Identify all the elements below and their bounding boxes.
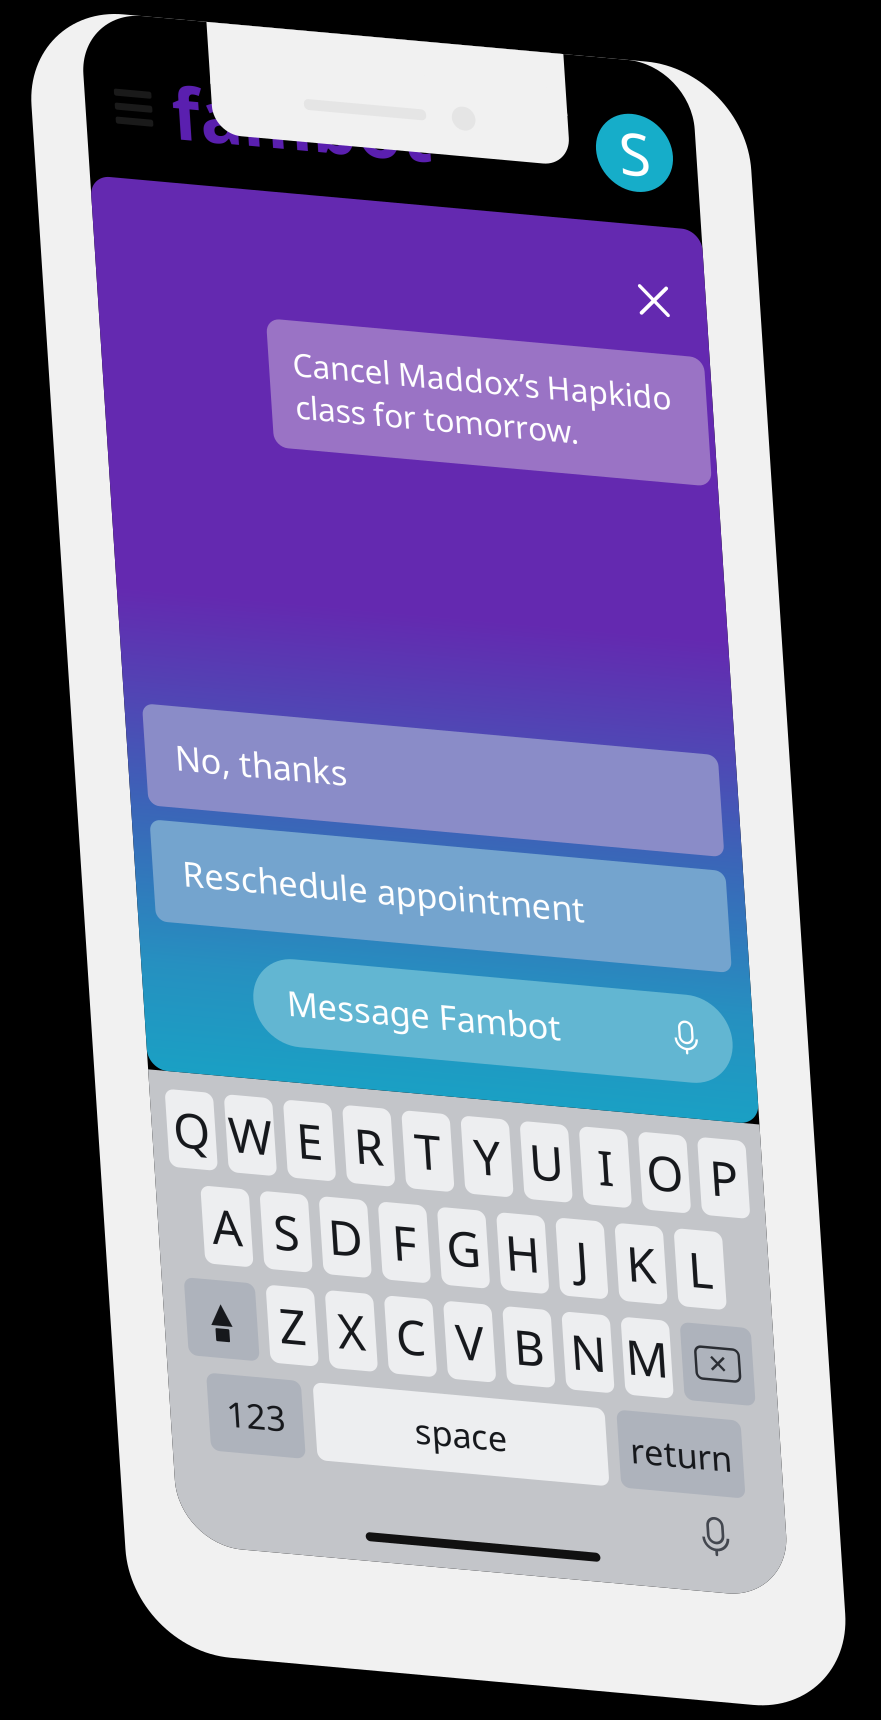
staticText: L bbox=[668, 1217, 693, 1280]
staticText: A bbox=[185, 1217, 216, 1280]
button[interactable]: K bbox=[596, 1209, 645, 1287]
button[interactable]: Q bbox=[146, 1115, 195, 1193]
button[interactable]: J bbox=[536, 1209, 585, 1287]
staticText: S bbox=[671, 91, 703, 169]
staticText: fambot bbox=[218, 83, 481, 178]
button[interactable]: Backspace bbox=[656, 1303, 728, 1381]
button[interactable]: I bbox=[566, 1115, 615, 1193]
staticText: X bbox=[306, 1311, 334, 1374]
staticText: 123 bbox=[187, 1413, 247, 1459]
button[interactable]: W bbox=[206, 1115, 255, 1193]
button[interactable]: C bbox=[356, 1303, 405, 1381]
button[interactable]: G bbox=[416, 1209, 465, 1287]
button[interactable]: S bbox=[236, 1209, 285, 1287]
button[interactable]: 123 bbox=[169, 1397, 265, 1475]
staticText: K bbox=[605, 1217, 635, 1280]
staticText: H bbox=[482, 1217, 518, 1280]
button[interactable]: return bbox=[585, 1397, 711, 1475]
staticText: T bbox=[397, 1123, 424, 1186]
staticText: S bbox=[247, 1217, 273, 1280]
button[interactable]: Message Fambot bbox=[242, 973, 728, 1061]
button[interactable]: Close bbox=[664, 244, 730, 310]
staticText: I bbox=[582, 1123, 598, 1186]
button[interactable]: O bbox=[626, 1115, 675, 1193]
button[interactable]: F bbox=[356, 1209, 405, 1287]
staticText: ✕ bbox=[681, 1328, 702, 1357]
button[interactable]: Reschedule appointment bbox=[148, 845, 732, 947]
staticText: F bbox=[368, 1217, 393, 1280]
staticText: C bbox=[365, 1311, 395, 1374]
staticText: D bbox=[303, 1217, 338, 1280]
button[interactable]: H bbox=[476, 1209, 525, 1287]
staticText: P bbox=[696, 1123, 725, 1186]
staticText: N bbox=[542, 1311, 578, 1374]
staticText: space bbox=[378, 1413, 472, 1459]
button[interactable]: Y bbox=[446, 1115, 495, 1193]
button[interactable]: Z bbox=[236, 1303, 285, 1381]
button[interactable]: P bbox=[686, 1115, 735, 1193]
button[interactable]: M bbox=[596, 1303, 645, 1381]
button[interactable]: X bbox=[296, 1303, 345, 1381]
staticText: ▲ bbox=[178, 1320, 200, 1352]
staticText: Reschedule appointment bbox=[178, 873, 586, 919]
staticText: W bbox=[208, 1123, 253, 1186]
button[interactable]: B bbox=[476, 1303, 525, 1381]
button[interactable]: Menu bbox=[152, 103, 206, 157]
staticText: E bbox=[277, 1123, 304, 1186]
button[interactable]: U bbox=[506, 1115, 555, 1193]
staticText: V bbox=[426, 1311, 455, 1374]
staticText: Cancel Maddox’s Hapkido class for tomorr… bbox=[324, 352, 708, 437]
button[interactable]: D bbox=[296, 1209, 345, 1287]
button[interactable]: V bbox=[416, 1303, 465, 1381]
staticText: Z bbox=[247, 1311, 274, 1374]
button[interactable]: L bbox=[656, 1209, 705, 1287]
button[interactable]: Shift bbox=[153, 1303, 225, 1381]
staticText: U bbox=[513, 1123, 548, 1186]
staticText: J bbox=[554, 1217, 567, 1280]
staticText: R bbox=[335, 1123, 365, 1186]
button[interactable]: No, thanks bbox=[148, 729, 732, 831]
button[interactable]: space bbox=[277, 1397, 573, 1475]
staticText: O bbox=[632, 1123, 669, 1186]
staticText: Q bbox=[152, 1123, 189, 1186]
button[interactable]: N bbox=[536, 1303, 585, 1381]
staticText: No, thanks bbox=[178, 757, 353, 803]
button[interactable]: T bbox=[386, 1115, 435, 1193]
staticText: Y bbox=[457, 1123, 484, 1186]
staticText: M bbox=[598, 1311, 642, 1374]
staticText: G bbox=[423, 1217, 458, 1280]
button[interactable]: Assistant bbox=[648, 91, 726, 169]
staticText: Message Fambot bbox=[276, 994, 554, 1040]
button[interactable]: A bbox=[176, 1209, 225, 1287]
staticText: B bbox=[485, 1311, 516, 1374]
button[interactable]: E bbox=[266, 1115, 315, 1193]
staticText: return bbox=[597, 1413, 700, 1459]
button[interactable]: R bbox=[326, 1115, 375, 1193]
